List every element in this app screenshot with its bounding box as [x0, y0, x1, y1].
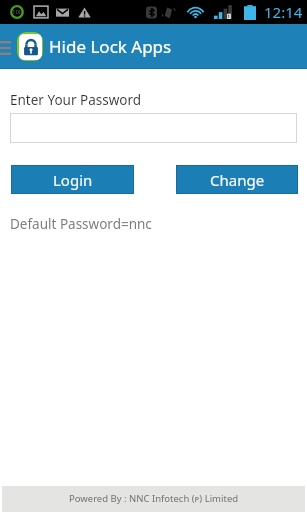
- staticText: Enter Your Password: [10, 91, 142, 109]
- button[interactable]: Open navigation menu: [0, 30, 11, 62]
- button[interactable]: Password input field: [10, 113, 297, 143]
- staticText: Powered By : NNC Infotech (ᴘ) Limited: [69, 492, 239, 505]
- staticText: 12:14: [264, 2, 303, 22]
- staticText: 100: [12, 8, 23, 16]
- button[interactable]: Login: [11, 165, 134, 194]
- staticText: Login: [53, 170, 93, 190]
- staticText: Hide Lock Apps: [49, 35, 172, 58]
- button[interactable]: Change: [176, 165, 298, 194]
- staticText: Change: [210, 170, 265, 190]
- staticText: Default Password=nnc: [10, 215, 152, 233]
